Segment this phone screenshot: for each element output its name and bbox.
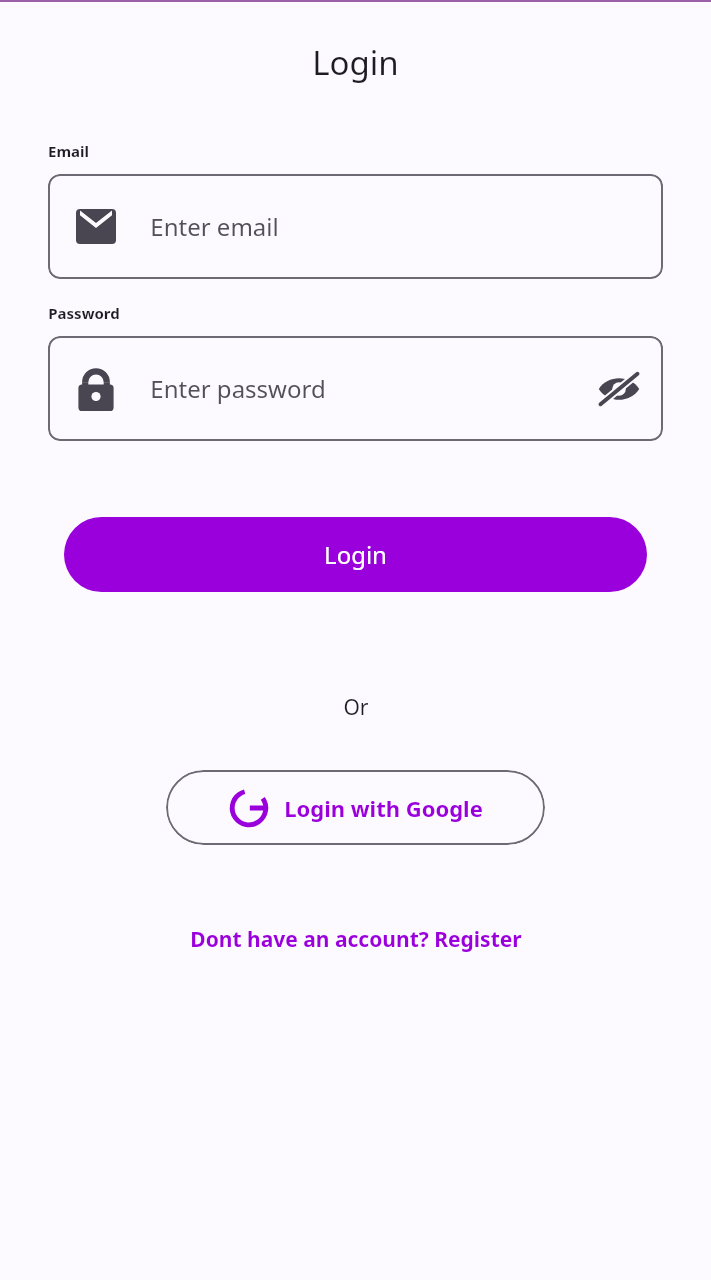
staticText: Password [48,303,120,323]
staticText: Dont have an account? Register [190,925,522,954]
staticText: Login [324,538,387,571]
button[interactable]: Enter password [48,336,663,441]
staticText: Enter email [150,210,279,243]
button[interactable]: Toggle password visibility [591,361,647,417]
staticText: Email [48,141,89,161]
button[interactable]: Login with Google [166,770,545,845]
staticText: Enter password [150,372,326,405]
staticText: Login [312,40,399,85]
button[interactable]: Login [64,517,647,592]
button[interactable]: Enter email [48,174,663,279]
button[interactable]: Dont have an account? Register [182,921,530,958]
staticText: Or [343,693,369,722]
staticText: Login with Google [284,793,483,823]
